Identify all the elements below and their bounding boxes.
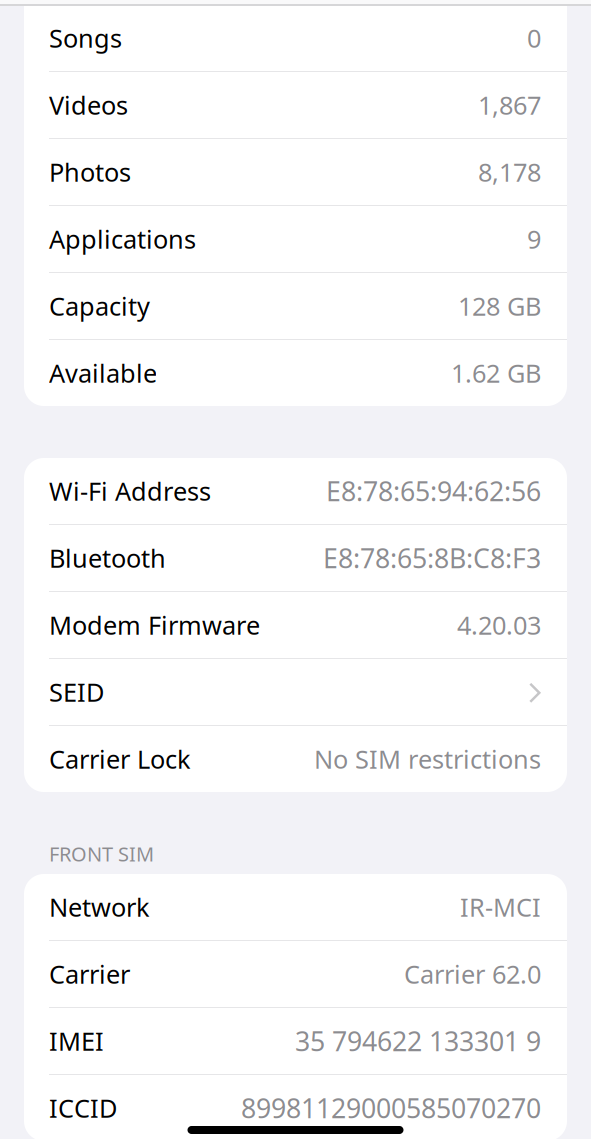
button[interactable]: IMEI	[24, 1008, 567, 1074]
button[interactable]: Songs	[24, 5, 567, 71]
staticText: Applications	[49, 222, 196, 256]
staticText: 1.62 GB	[451, 356, 541, 390]
staticText: Songs	[49, 21, 122, 55]
button[interactable]: Available	[24, 340, 567, 406]
staticText: Modem Firmware	[49, 608, 260, 642]
staticText: Available	[49, 356, 157, 390]
staticText: 89981129000585070270	[241, 1090, 541, 1126]
staticText: No SIM restrictions	[314, 742, 541, 776]
staticText: Capacity	[49, 289, 150, 323]
staticText: Network	[49, 890, 150, 924]
staticText: 1,867	[478, 88, 541, 122]
staticText: 0	[527, 21, 541, 55]
staticText: ICCID	[49, 1091, 117, 1125]
staticText: Carrier	[49, 957, 130, 991]
button[interactable]: Capacity	[24, 273, 567, 339]
button[interactable]: Carrier	[24, 941, 567, 1007]
staticText: Videos	[49, 88, 128, 122]
button[interactable]: SEID	[24, 659, 567, 725]
staticText: E8:78:65:94:62:56	[326, 473, 541, 509]
staticText: SEID	[49, 675, 104, 709]
button[interactable]: Carrier Lock	[24, 726, 567, 792]
button[interactable]: Photos	[24, 139, 567, 205]
staticText: Photos	[49, 155, 131, 189]
button[interactable]: Applications	[24, 206, 567, 272]
staticText: 35 794622 133301 9	[295, 1023, 541, 1059]
staticText: Bluetooth	[49, 541, 166, 575]
staticText: 128 GB	[458, 289, 541, 323]
staticText: Wi-Fi Address	[49, 474, 211, 508]
button[interactable]: Network	[24, 874, 567, 940]
staticText: 4.20.03	[457, 608, 541, 642]
staticText: E8:78:65:8B:C8:F3	[323, 540, 541, 576]
staticText: IR-MCI	[460, 890, 541, 924]
button[interactable]: Videos	[24, 72, 567, 138]
staticText: Carrier Lock	[49, 742, 191, 776]
staticText: Carrier 62.0	[404, 957, 541, 991]
staticText: IMEI	[49, 1024, 104, 1058]
button[interactable]: ICCID	[24, 1075, 567, 1139]
button[interactable]: Wi-Fi Address	[24, 458, 567, 524]
staticText: 9	[527, 222, 541, 256]
staticText: FRONT SIM	[49, 840, 154, 867]
staticText: 8,178	[478, 155, 541, 189]
button[interactable]: Modem Firmware	[24, 592, 567, 658]
button[interactable]: Bluetooth	[24, 525, 567, 591]
